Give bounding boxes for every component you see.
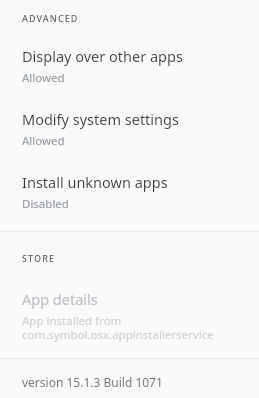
staticText: Install unknown apps [22, 172, 168, 192]
button[interactable]: Modify system settings [0, 88, 259, 151]
button[interactable]: Install unknown apps [0, 151, 259, 214]
staticText: Modify system settings [22, 109, 179, 129]
staticText: App details [22, 289, 98, 309]
button[interactable]: Display over other apps [0, 24, 259, 88]
staticText: Allowed [22, 70, 65, 86]
staticText: App installed from com.symbol.osx.appins… [22, 313, 214, 342]
staticText: Disabled [22, 196, 69, 212]
staticText: version 15.1.3 Build 1071 [22, 374, 163, 390]
staticText: Allowed [22, 133, 65, 149]
button[interactable]: App details [0, 264, 259, 344]
staticText: Display over other apps [22, 46, 183, 66]
staticText: ADVANCED [22, 12, 79, 24]
staticText: STORE [22, 252, 56, 264]
